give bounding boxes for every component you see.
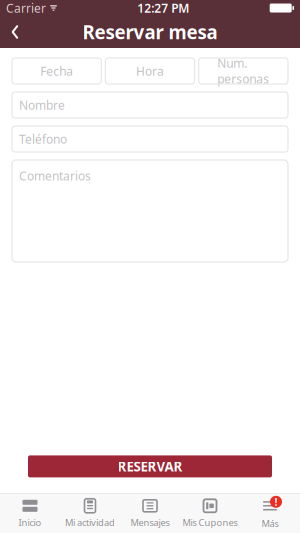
button[interactable]: Back — [0, 16, 30, 48]
staticText: RESERVAR — [117, 457, 182, 475]
staticText: Carrier — [6, 0, 46, 16]
button[interactable]: Mi actividad — [60, 494, 120, 533]
button[interactable]: Mis Cupones — [180, 494, 240, 533]
button[interactable]: RESERVAR — [28, 455, 272, 477]
staticText: Hora — [136, 63, 164, 79]
staticText: Inicio — [18, 516, 41, 529]
staticText: ! — [274, 495, 277, 509]
staticText: 12:27 PM — [137, 0, 189, 16]
staticText: Reservar mesa — [82, 20, 217, 44]
staticText: Fecha — [40, 63, 73, 79]
staticText: Más — [261, 517, 278, 530]
button[interactable]: Inicio — [0, 494, 60, 533]
staticText: Comentarios — [19, 168, 91, 184]
staticText: Mensajes — [130, 516, 169, 529]
staticText: Nombre — [19, 97, 65, 113]
staticText: Teléfono — [19, 131, 67, 147]
button[interactable]: Mensajes — [120, 494, 180, 533]
staticText: Mi actividad — [65, 516, 115, 529]
button[interactable]: ! — [240, 494, 300, 533]
staticText: Num. personas — [217, 55, 269, 87]
staticText: Mis Cupones — [182, 516, 237, 529]
